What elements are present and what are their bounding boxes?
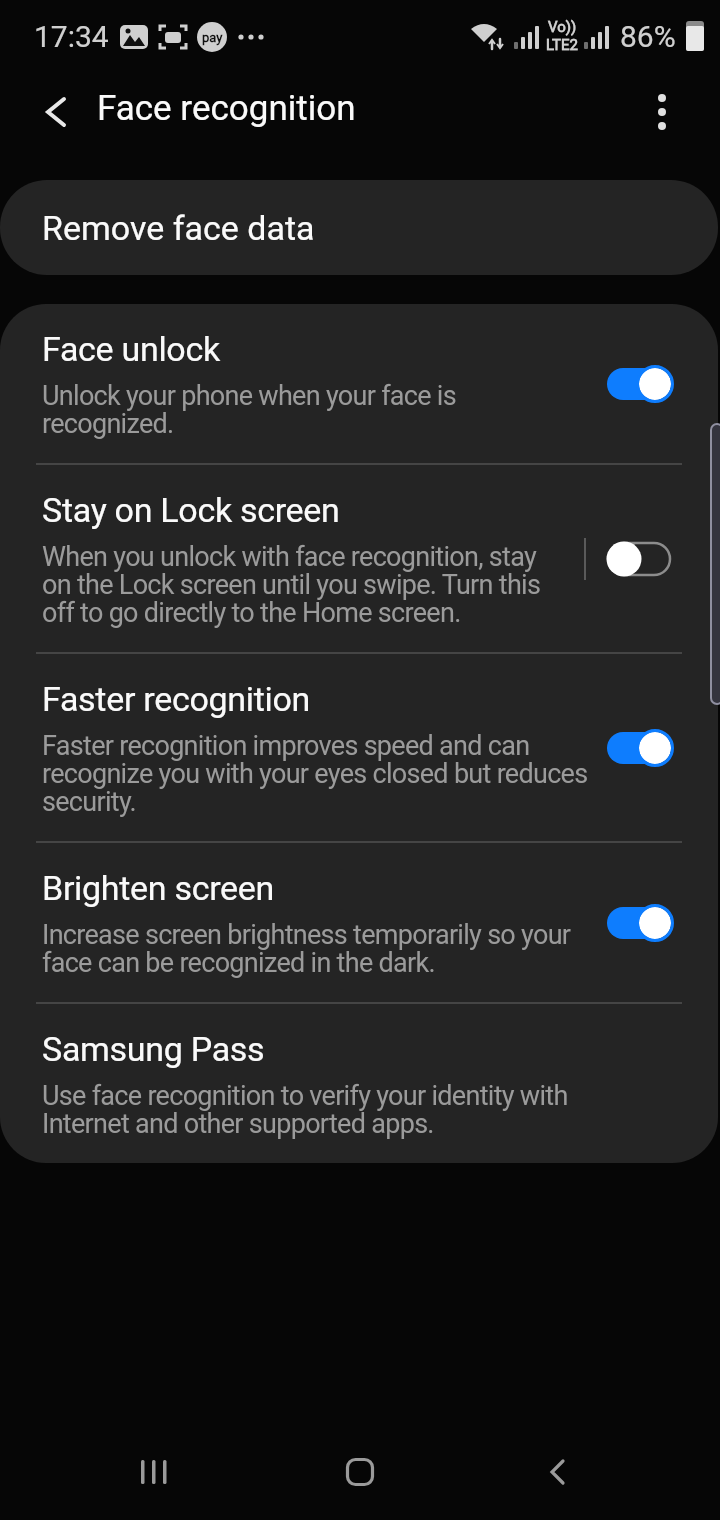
button[interactable] [606, 539, 672, 579]
button[interactable] [606, 364, 672, 404]
staticText: Unlock your phone when your face is reco… [42, 380, 456, 440]
staticText: Face unlock [42, 329, 220, 369]
staticText: Faster recognition [42, 679, 311, 719]
staticText: pay [202, 30, 223, 45]
button[interactable]: Stay on Lock screen [0, 465, 718, 652]
staticText: Vo)) [548, 18, 577, 36]
button[interactable] [522, 1436, 594, 1508]
staticText: Brighten screen [42, 868, 275, 908]
staticText: Samsung Pass [42, 1029, 265, 1069]
staticText: Faster recognition improves speed and ca… [42, 730, 588, 818]
staticText: LTE2 [546, 36, 578, 54]
staticText: Stay on Lock screen [42, 490, 340, 530]
staticText: 86% [620, 19, 676, 54]
button[interactable]: Brighten screen [0, 843, 718, 1002]
button[interactable] [118, 1436, 190, 1508]
button[interactable] [606, 903, 672, 943]
staticText: Increase screen brightness temporarily s… [42, 919, 571, 979]
button[interactable] [30, 86, 82, 138]
button[interactable]: Faster recognition [0, 654, 718, 841]
staticText: Face recognition [97, 88, 356, 129]
button[interactable]: Face unlock [0, 304, 718, 463]
staticText: 17:34 [34, 19, 109, 54]
staticText: Remove face data [42, 208, 315, 248]
button[interactable]: Remove face data [0, 180, 718, 275]
button[interactable] [606, 728, 672, 768]
staticText: Use face recognition to verify your iden… [42, 1080, 568, 1140]
staticText: When you unlock with face recognition, s… [42, 541, 541, 629]
button[interactable] [324, 1436, 396, 1508]
button[interactable]: Samsung Pass [0, 1004, 718, 1163]
button[interactable] [640, 90, 684, 134]
